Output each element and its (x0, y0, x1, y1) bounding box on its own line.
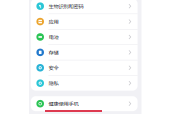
staticText: 健康使用手机 (48, 100, 78, 107)
staticText: 电池 (48, 33, 58, 41)
button[interactable]: 生物识别和密码 (31, 0, 138, 14)
button[interactable]: 存储 (31, 45, 138, 60)
button[interactable]: 隐私 (31, 76, 138, 91)
staticText: 应用 (48, 18, 58, 25)
staticText: 存储 (48, 48, 58, 56)
button[interactable]: 健康使用手机 (31, 96, 138, 111)
button[interactable]: 应用 (31, 14, 138, 29)
staticText: 生物识别和密码 (48, 2, 83, 10)
button[interactable]: 安全 (31, 60, 138, 75)
staticText: 隐私 (48, 79, 58, 87)
staticText: 安全 (48, 64, 58, 72)
button[interactable]: 电池 (31, 29, 138, 44)
